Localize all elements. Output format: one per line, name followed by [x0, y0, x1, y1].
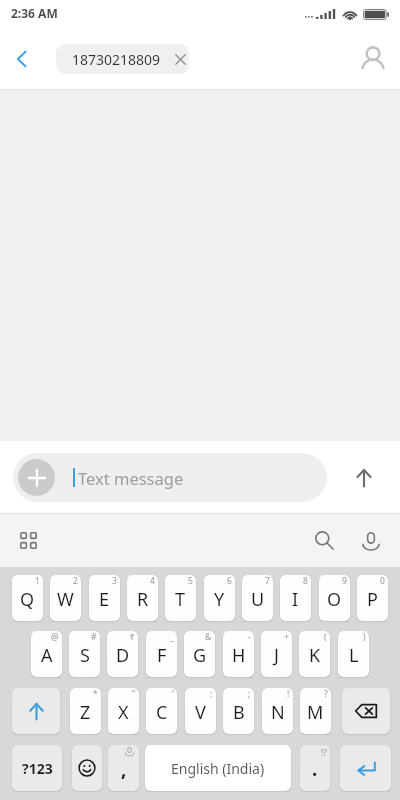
staticText: @ [51, 631, 59, 643]
staticText: 4 [150, 575, 155, 587]
button[interactable]: Voice input [350, 520, 391, 561]
button[interactable]: ; [223, 688, 254, 734]
button[interactable]: Add attachment [18, 459, 55, 496]
button[interactable]: - [223, 631, 254, 677]
button[interactable]: : [185, 688, 216, 734]
button[interactable]: Enter [340, 745, 391, 791]
staticText: ? [324, 688, 328, 700]
button[interactable]: Symbols [12, 745, 62, 791]
staticText: B [233, 700, 245, 725]
button[interactable]: 6 [204, 575, 235, 621]
staticText: H [232, 643, 246, 668]
button[interactable]: Backspace [342, 688, 390, 734]
button[interactable]: 8 [280, 575, 311, 621]
staticText: 2 [73, 575, 78, 587]
staticText: A [41, 643, 53, 668]
staticText: # [91, 631, 97, 643]
staticText: E [99, 587, 110, 612]
staticText: ; [248, 688, 251, 700]
staticText: W [57, 587, 74, 612]
staticText: 8 [303, 575, 308, 587]
staticText: Y [214, 587, 225, 612]
staticText: Q [20, 587, 35, 612]
button[interactable]: 4 [127, 575, 158, 621]
staticText: K [309, 643, 321, 668]
button[interactable]: # [69, 631, 100, 677]
staticText: . [312, 756, 318, 782]
staticText: R [137, 587, 149, 612]
staticText: 3 [112, 575, 117, 587]
button[interactable]: _ [146, 631, 177, 677]
button[interactable]: Search [304, 520, 345, 561]
staticText: !? [321, 747, 327, 758]
staticText: ' [172, 688, 174, 700]
button[interactable]: , [108, 745, 139, 791]
button[interactable]: @ [31, 631, 62, 677]
button[interactable]: 1 [12, 575, 43, 621]
button[interactable]: ₹ [107, 631, 138, 677]
button[interactable]: ' [146, 688, 177, 734]
staticText: J [274, 643, 279, 668]
button[interactable]: & [184, 631, 215, 677]
button[interactable]: 7 [242, 575, 273, 621]
button[interactable]: 18730218809 [56, 44, 189, 74]
staticText: I [292, 587, 299, 612]
staticText: 18730218809 [72, 50, 161, 69]
button[interactable]: Back [0, 28, 44, 90]
button[interactable]: * [70, 688, 101, 734]
button[interactable]: 5 [165, 575, 196, 621]
staticText: Z [80, 700, 91, 725]
staticText: S [80, 643, 90, 668]
staticText: L [349, 643, 359, 668]
staticText: ) [363, 631, 366, 643]
staticText: 0 [380, 575, 385, 587]
staticText: _ [170, 631, 174, 643]
staticText: 9 [342, 575, 347, 587]
button[interactable]: 0 [357, 575, 388, 621]
button[interactable]: English (India) [145, 745, 291, 791]
button[interactable]: !? [300, 745, 330, 791]
staticText: X [118, 700, 129, 725]
staticText: M [307, 700, 324, 725]
staticText: N [271, 700, 285, 725]
staticText: G [193, 643, 207, 668]
button[interactable]: Send [327, 441, 400, 514]
staticText: ?123 [22, 759, 53, 778]
button[interactable]: Keyboard options [8, 520, 49, 561]
staticText: 5 [188, 575, 193, 587]
staticText: 7 [265, 575, 270, 587]
button[interactable]: 3 [89, 575, 120, 621]
staticText: : [210, 688, 213, 700]
staticText: 2:36 AM [11, 5, 58, 21]
staticText: English (India) [171, 759, 265, 778]
button[interactable]: 9 [319, 575, 350, 621]
button[interactable]: Contact details [346, 28, 400, 90]
button[interactable]: Add attachment [13, 453, 327, 502]
staticText: T [175, 587, 186, 612]
staticText: P [367, 587, 378, 612]
staticText: V [195, 700, 206, 725]
staticText: 1 [35, 575, 40, 587]
staticText: C [156, 700, 168, 725]
button[interactable]: ! [262, 688, 293, 734]
staticText: * [93, 688, 98, 700]
staticText: , [121, 756, 127, 782]
staticText: & [205, 631, 212, 643]
staticText: - [248, 631, 251, 643]
staticText: ₹ [130, 631, 135, 643]
button[interactable]: Emoji [72, 745, 102, 791]
staticText: Text message [78, 467, 184, 489]
staticText: ( [324, 631, 327, 643]
button[interactable]: ( [299, 631, 330, 677]
button[interactable]: ) [338, 631, 369, 677]
staticText: F [157, 643, 167, 668]
staticText: O [327, 587, 342, 612]
button[interactable]: " [108, 688, 139, 734]
button[interactable]: Shift [12, 688, 60, 734]
staticText: 6 [227, 575, 232, 587]
button[interactable]: ? [300, 688, 331, 734]
button[interactable]: 2 [50, 575, 81, 621]
staticText: ! [287, 688, 290, 700]
staticText: U [251, 587, 265, 612]
button[interactable]: + [261, 631, 292, 677]
